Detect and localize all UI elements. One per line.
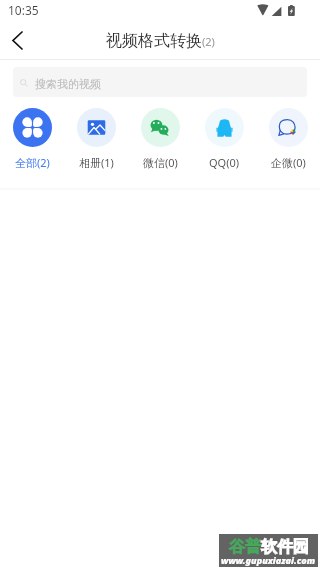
staticText: www.gupuxiazai.com xyxy=(221,554,316,566)
staticText: QQ(0) xyxy=(209,155,240,170)
staticText: 软件园 xyxy=(261,537,309,557)
button[interactable]: 搜索我的视频 xyxy=(13,67,307,97)
staticText: 微信(0) xyxy=(143,155,178,170)
button[interactable]: QQ(0) xyxy=(192,98,256,170)
staticText: 企微(0) xyxy=(271,155,306,170)
staticText: 搜索我的视频 xyxy=(35,77,101,91)
staticText: 10:35 xyxy=(8,2,39,18)
button[interactable]: Back xyxy=(0,23,35,58)
button[interactable]: 相册(1) xyxy=(64,98,128,170)
staticText: 相册(1) xyxy=(79,155,114,170)
button[interactable]: 全部(2) xyxy=(0,98,64,170)
staticText: 全部(2) xyxy=(15,155,50,170)
staticText: 谷普 xyxy=(229,537,261,557)
button[interactable]: 企微(0) xyxy=(256,98,320,170)
button[interactable]: 微信(0) xyxy=(128,98,192,170)
staticText: 视频格式转换(2) xyxy=(106,31,215,51)
